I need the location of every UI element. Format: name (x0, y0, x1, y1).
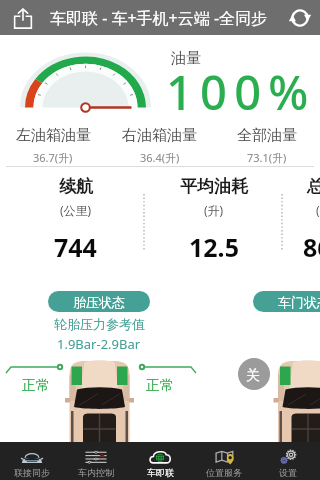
staticText: 左油箱油量 (16, 126, 91, 145)
staticText: 100% (166, 60, 316, 124)
button[interactable]: 联接同步 (0, 442, 64, 480)
staticText: (升) (204, 202, 224, 218)
button[interactable]: Refresh (286, 4, 314, 32)
staticText: 车门状态 (278, 294, 320, 310)
staticText: 续航 (59, 176, 93, 197)
button[interactable]: 车内控制 (64, 442, 128, 480)
staticText: 总里程 (307, 176, 320, 197)
button[interactable]: 位置服务 (192, 442, 256, 480)
staticText: 36.4(升) (140, 150, 180, 165)
staticText: 8634 (303, 230, 320, 264)
button[interactable]: Share (8, 3, 38, 33)
staticText: 右油箱油量 (122, 126, 197, 145)
staticText: (公里) (316, 202, 320, 218)
staticText: 744 (54, 230, 97, 264)
staticText: (公里) (60, 202, 92, 218)
staticText: 油量 (171, 49, 201, 68)
staticText: 车即联 (147, 467, 174, 478)
staticText: 全部油量 (237, 126, 297, 145)
staticText: 设置 (279, 467, 297, 478)
staticText: 车即联 - 车+手机+云端 -全同步 (50, 7, 268, 29)
button[interactable]: 设置 (256, 442, 320, 480)
staticText: 位置服务 (206, 467, 242, 478)
staticText: 轮胎压力参考值 (54, 316, 145, 332)
staticText: 车内控制 (78, 467, 114, 478)
staticText: 正常 (146, 377, 174, 395)
staticText: 36.7(升) (33, 150, 73, 165)
button[interactable]: 车门状态 (253, 291, 320, 312)
button[interactable]: 胎压状态 (48, 291, 150, 312)
staticText: 正常 (22, 377, 50, 395)
staticText: 联接同步 (14, 467, 50, 478)
staticText: 胎压状态 (73, 294, 125, 310)
staticText: 平均油耗 (180, 176, 248, 197)
staticText: 73.1(升) (247, 150, 287, 165)
button[interactable]: 车即联 (128, 442, 192, 480)
staticText: 1.9Bar-2.9Bar (57, 335, 141, 353)
staticText: 12.5 (189, 230, 239, 264)
staticText: 关 (246, 367, 260, 385)
